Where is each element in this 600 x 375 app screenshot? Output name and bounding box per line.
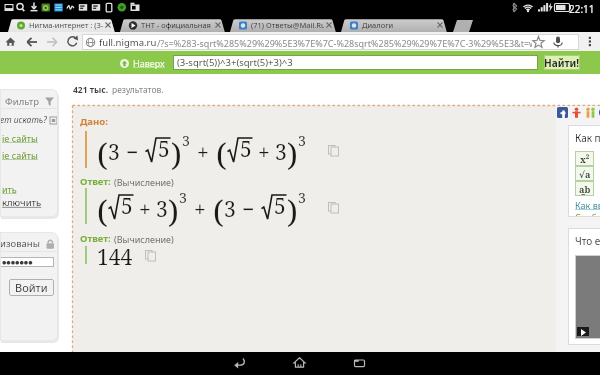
button[interactable]: Home: [1, 32, 20, 51]
staticText: (: [97, 133, 108, 170]
staticText: 421 тыс.: [73, 84, 109, 96]
staticText: 22:11: [569, 2, 595, 16]
staticText: (71) Ответы@Mail.Ru: [251, 20, 324, 30]
staticText: Как пр: [575, 131, 600, 145]
staticText: 5: [240, 135, 252, 163]
button[interactable]: (71) Ответы@Mail.Ru: [230, 17, 339, 32]
button[interactable]: (3-sqrt(5))^3+(sqrt(5)+3)^3: [173, 55, 538, 70]
button[interactable]: Диалоги: [341, 17, 450, 32]
staticText: (: [216, 133, 227, 170]
staticText: 3: [298, 131, 306, 150]
staticText: (Вычисление): [114, 176, 174, 188]
staticText: 144: [97, 243, 133, 272]
staticText: Ответ:: [80, 232, 111, 245]
staticText: 3: [275, 138, 287, 167]
button[interactable]: More options: [585, 36, 595, 46]
staticText: ): [287, 190, 298, 227]
staticText: full.nigma.ru: [99, 36, 157, 49]
staticText: Дано:: [80, 115, 108, 128]
staticText: (Вычисление): [114, 233, 174, 245]
staticText: Что ес: [575, 234, 600, 248]
button[interactable]: Copy: [328, 145, 339, 156]
button[interactable]: full.nigma.ru: [82, 34, 579, 50]
staticText: ●●●●●●●: [2, 259, 33, 265]
button[interactable]: Copy: [145, 250, 156, 261]
staticText: 5: [158, 135, 170, 163]
staticText: ключить: [2, 196, 42, 209]
button[interactable]: Forward: [42, 32, 62, 51]
button[interactable]: Home: [276, 352, 322, 375]
staticText: +: [139, 195, 151, 224]
staticText: 3: [108, 138, 120, 167]
staticText: +: [194, 195, 206, 224]
button[interactable]: Voice search: [552, 36, 564, 48]
staticText: Наверх: [133, 57, 165, 69]
staticText: ет искать?: [0, 114, 47, 126]
staticText: Ответ:: [80, 175, 111, 188]
staticText: Как вв: [575, 199, 600, 211]
button[interactable]: Back: [216, 352, 262, 375]
staticText: ТНТ - официальная: [141, 20, 213, 30]
staticText: Найти!: [544, 56, 580, 70]
staticText: Диалоги: [362, 20, 435, 30]
staticText: 3: [179, 188, 187, 207]
staticText: Сообщ: [575, 211, 600, 217]
staticText: 3: [224, 195, 236, 224]
staticText: /?s=%283-sqrt%285%29%29%5E3%7E%7C-%28sqr…: [157, 37, 532, 49]
button[interactable]: Наверх: [120, 57, 165, 69]
staticText: Войти: [15, 280, 48, 295]
staticText: (: [213, 190, 224, 227]
button[interactable]: Copy: [328, 202, 339, 213]
staticText: 3: [298, 188, 306, 207]
staticText: Фильтр: [5, 95, 40, 108]
button[interactable]: Войти: [9, 279, 54, 296]
staticText: 3: [156, 195, 168, 224]
staticText: ): [168, 190, 179, 227]
staticText: a̲b: [579, 183, 591, 195]
staticText: x²: [580, 153, 590, 165]
staticText: 5: [121, 192, 133, 220]
staticText: ie сайты: [2, 149, 38, 161]
staticText: +: [197, 138, 209, 167]
button[interactable]: Нигма-интернет : (3-: [8, 17, 118, 32]
button[interactable]: Recent apps: [336, 352, 382, 375]
button[interactable]: Back: [22, 32, 42, 51]
staticText: ie сайты: [2, 132, 38, 144]
button[interactable]: ТНТ - официальная: [120, 17, 228, 32]
staticText: 5: [274, 192, 286, 220]
staticText: −: [242, 195, 255, 224]
button[interactable]: Reload: [63, 32, 82, 51]
staticText: Нигма-интернет : (3-: [29, 20, 103, 30]
staticText: результатов.: [112, 84, 164, 96]
staticText: −: [126, 138, 139, 167]
button[interactable]: Найти!: [544, 55, 580, 70]
staticText: ): [171, 133, 182, 170]
button[interactable]: Bookmark: [532, 36, 545, 49]
staticText: (: [97, 190, 108, 227]
staticText: 3: [182, 131, 190, 150]
staticText: изованы: [0, 237, 40, 250]
staticText: ): [287, 133, 298, 170]
staticText: (3-sqrt(5))^3+(sqrt(5)+3)^3: [177, 56, 293, 69]
staticText: √a: [579, 168, 591, 180]
button[interactable]: New tab: [453, 20, 473, 32]
staticText: +: [258, 138, 270, 167]
staticText: ить: [2, 183, 17, 195]
